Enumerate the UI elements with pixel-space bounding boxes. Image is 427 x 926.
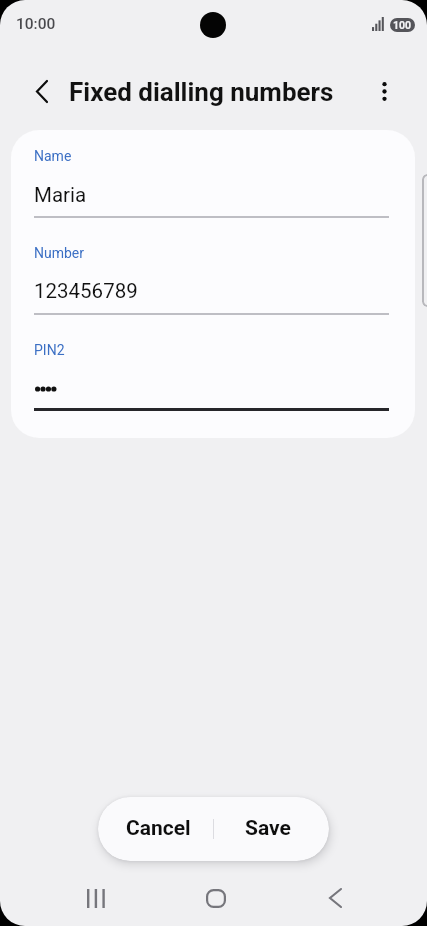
button[interactable]: Name [34,140,389,220]
button[interactable]: More options [361,68,407,114]
staticText: Number [34,245,85,261]
button[interactable]: Number [34,237,389,317]
button[interactable]: Navigate up [19,68,65,114]
staticText: Save [245,816,291,841]
staticText: Fixed dialling numbers [69,77,334,107]
staticText: 100 [393,19,412,31]
button[interactable]: Home [192,874,240,922]
button[interactable]: Cancel [103,797,214,860]
button[interactable]: Back [311,874,359,922]
staticText: 10:00 [16,15,56,33]
button[interactable]: Recent apps [72,874,120,922]
staticText: Maria [34,183,87,207]
button[interactable]: PIN2 [34,334,389,414]
staticText: PIN2 [34,342,65,358]
staticText: Name [34,148,72,164]
staticText: 123456789 [34,279,138,303]
staticText: Cancel [126,816,191,841]
button[interactable]: Save [212,797,323,860]
